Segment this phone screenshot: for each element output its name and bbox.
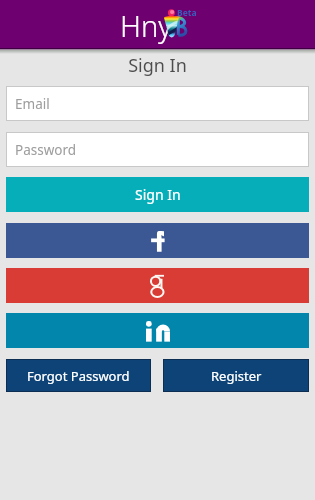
staticText: Forgot Password [27,367,130,385]
staticText: Email [15,95,50,113]
other: Sign in with Google [143,271,173,301]
button[interactable]: Email [6,86,309,121]
other: Sign in with LinkedIn [143,316,173,346]
button[interactable]: Sign in with Google [6,268,309,303]
staticText: Sign In [0,53,315,78]
other: Sign in with Facebook [143,226,173,256]
staticText: Password [15,141,77,159]
button[interactable]: Register [163,359,309,392]
staticText: Beta [177,7,197,19]
button[interactable]: Sign In [6,177,309,212]
staticText: Hny [120,6,172,45]
button[interactable]: Sign in with LinkedIn [6,313,309,348]
button[interactable]: Forgot Password [6,359,151,392]
button[interactable]: Password [6,132,309,167]
staticText: Sign In [135,185,181,204]
staticText: Register [211,367,262,385]
button[interactable]: Sign in with Facebook [6,223,309,258]
